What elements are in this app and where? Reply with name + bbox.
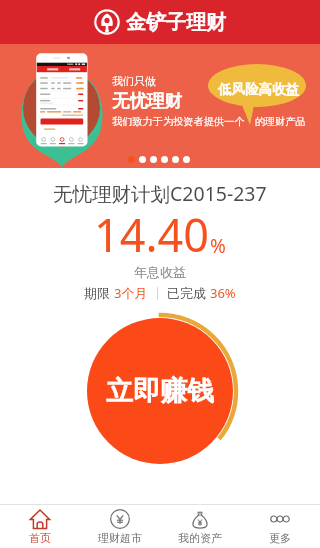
- staticText: %: [210, 233, 226, 259]
- button[interactable]: 立即赚钱: [82, 313, 238, 469]
- staticText: 14.40: [94, 204, 210, 265]
- staticText: 年息收益: [134, 264, 186, 280]
- staticText: 首页: [29, 531, 51, 545]
- staticText: 36%: [210, 284, 236, 302]
- button[interactable]: 首页: [0, 505, 80, 548]
- staticText: 金铲子理财: [126, 10, 226, 35]
- staticText: 无忧理财: [112, 90, 182, 112]
- staticText: 3个月: [114, 284, 148, 302]
- staticText: 我们致力于为投资者提供一个 的理财产品: [112, 114, 306, 128]
- staticText: 已完成: [167, 284, 210, 302]
- staticText: 期限: [84, 284, 114, 302]
- button[interactable]: 理财超市: [80, 505, 160, 548]
- staticText: 更多: [269, 531, 291, 545]
- button[interactable]: 我的资产: [160, 505, 240, 548]
- other: Logo: [94, 9, 120, 35]
- staticText: 我们只做: [112, 74, 156, 88]
- button[interactable]: 更多: [240, 505, 320, 548]
- staticText: 理财超市: [98, 531, 142, 545]
- staticText: 立即赚钱: [106, 374, 214, 408]
- staticText: 我的资产: [178, 531, 222, 545]
- staticText: 低风险高收益: [218, 81, 299, 98]
- staticText: 无忧理财计划C2015-237: [53, 180, 267, 207]
